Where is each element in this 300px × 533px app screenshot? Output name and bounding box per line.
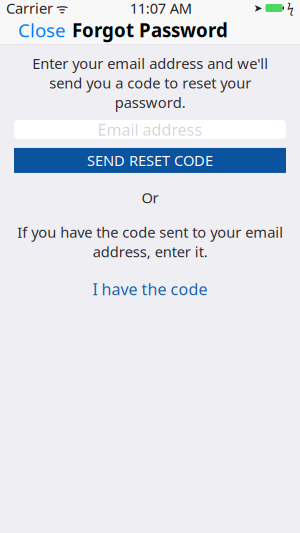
staticText: SEND RESET CODE (87, 151, 213, 170)
staticText: Enter your email address and we'll send … (32, 53, 268, 112)
staticText: Carrier (6, 0, 53, 18)
staticText: I have the code (92, 278, 207, 300)
staticText: ᯤ (53, 0, 68, 17)
staticText: 11:07 AM (130, 0, 192, 18)
staticText: If you have the code sent to your email … (17, 222, 283, 261)
staticText: Forgot Password (72, 18, 228, 42)
staticText: ϟ (287, 0, 294, 16)
staticText: Close (18, 18, 66, 42)
button[interactable]: Close (10, 12, 74, 48)
staticText: Email address (97, 119, 202, 140)
button[interactable]: I have the code (82, 273, 217, 305)
button[interactable]: SEND RESET CODE (14, 148, 286, 173)
staticText: Or (141, 188, 158, 207)
staticText: ➤ (253, 2, 262, 14)
